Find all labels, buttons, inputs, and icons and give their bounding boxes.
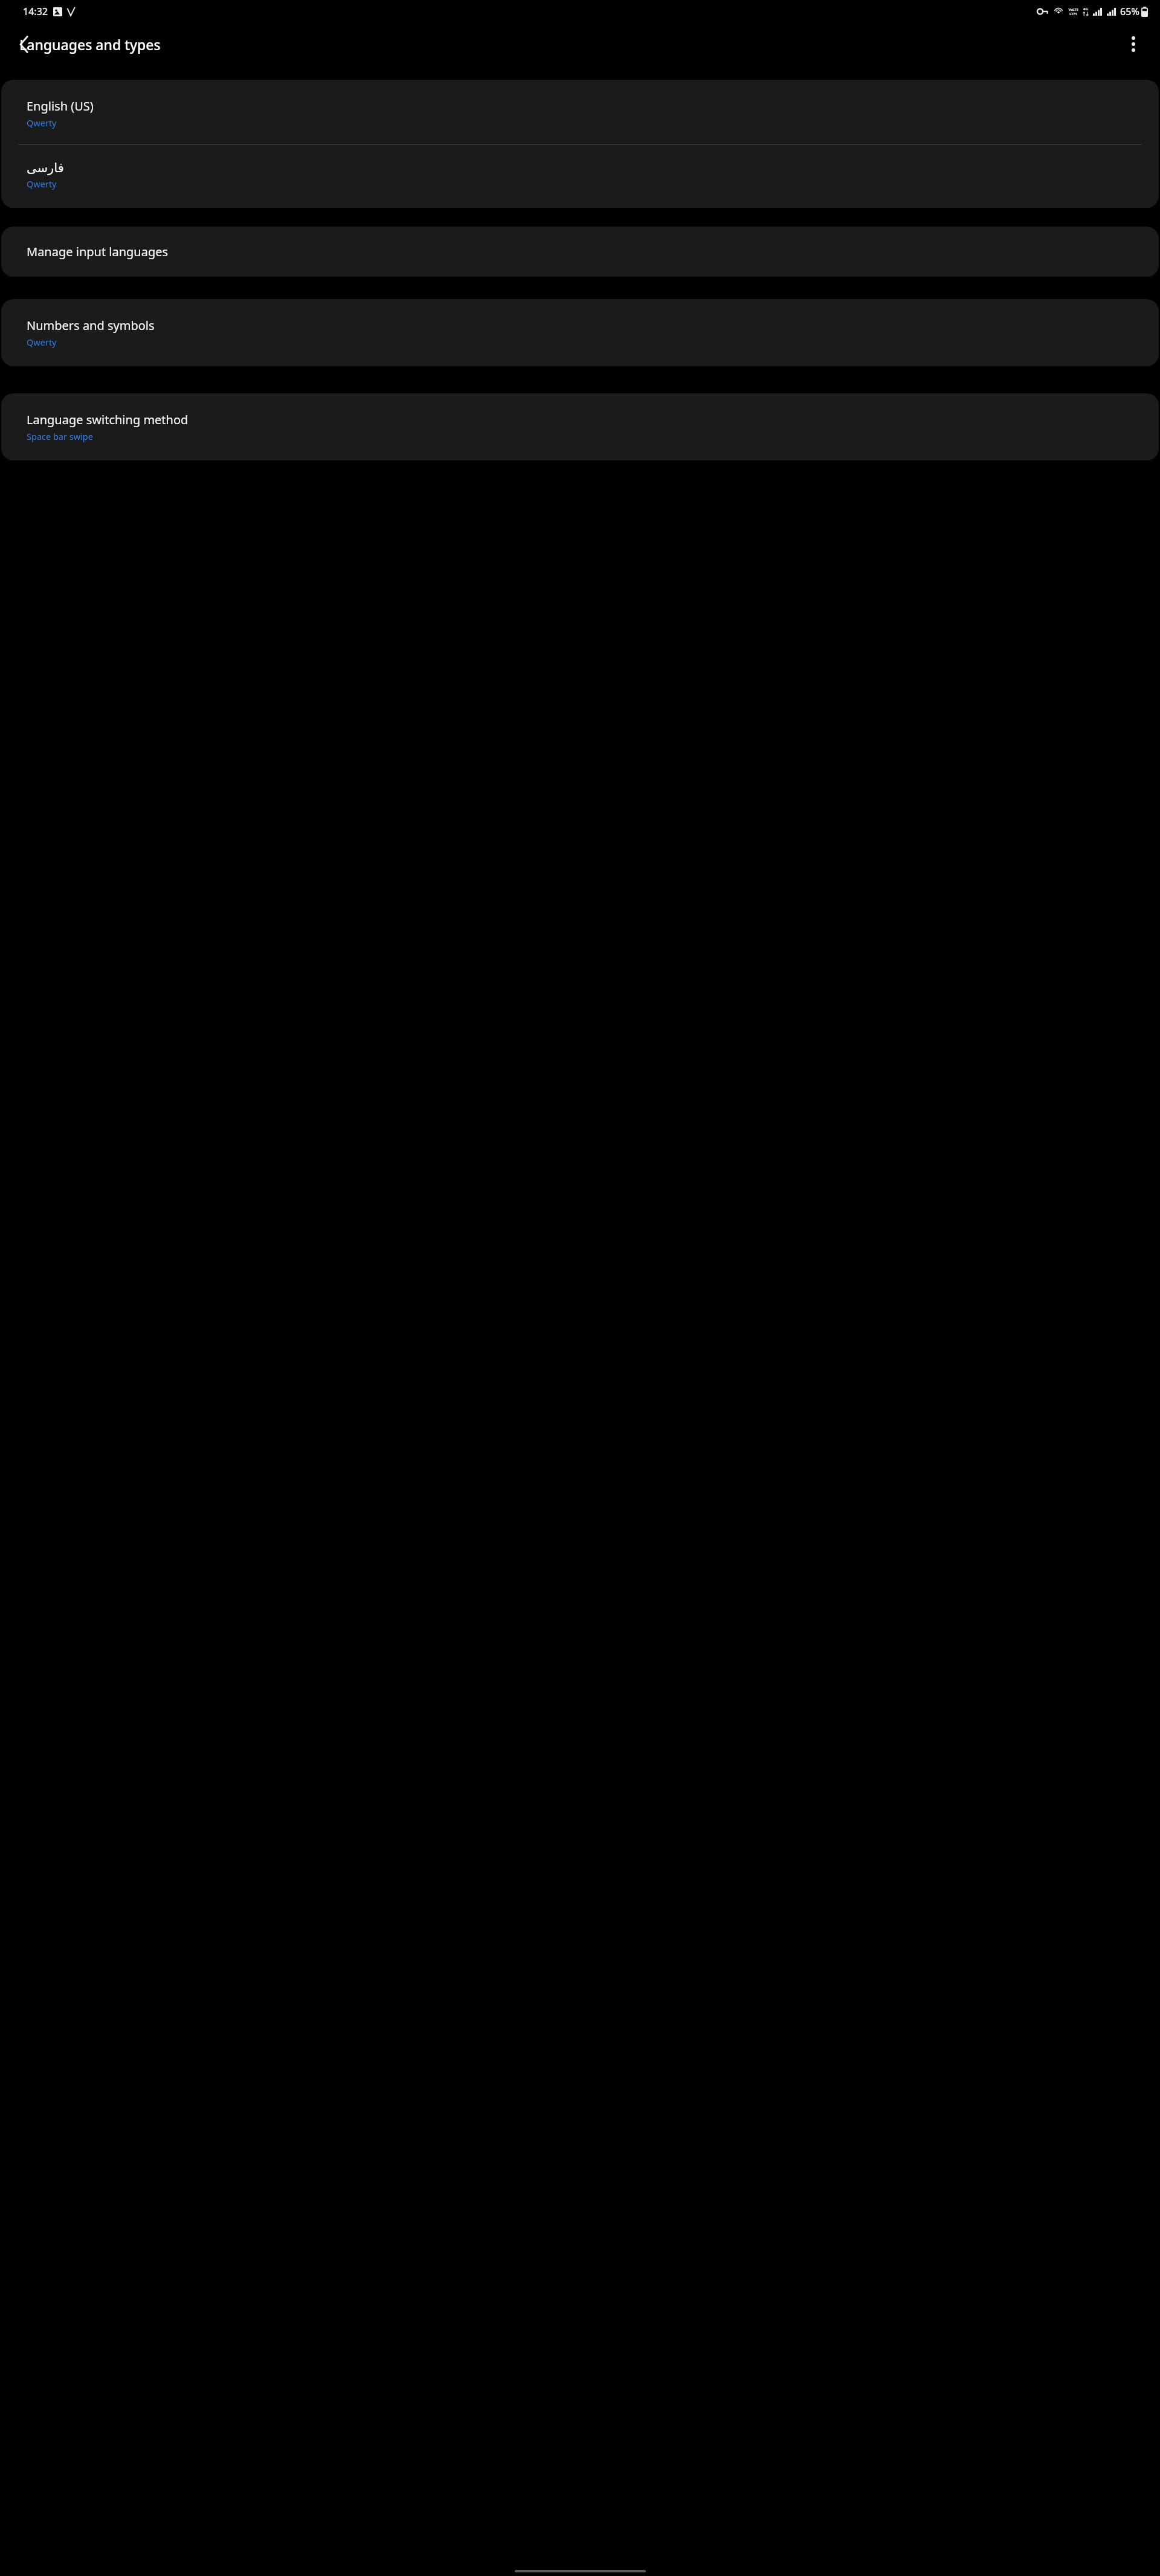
- button[interactable]: فارسی: [1, 145, 1159, 208]
- staticText: Manage input languages: [27, 244, 169, 260]
- staticText: English (US): [27, 98, 94, 114]
- staticText: VoLTE: [1068, 7, 1078, 11]
- button[interactable]: Manage input languages: [1, 227, 1159, 277]
- staticText: Languages and types: [19, 35, 161, 54]
- button[interactable]: More options: [1120, 31, 1147, 57]
- staticText: Qwerty: [27, 178, 57, 190]
- staticText: Qwerty: [27, 336, 57, 348]
- staticText: Qwerty: [27, 117, 57, 129]
- button[interactable]: English (US): [1, 80, 1159, 144]
- button[interactable]: Language switching method: [1, 393, 1159, 460]
- staticText: 4G: [1083, 7, 1088, 11]
- staticText: 14:32: [23, 5, 48, 18]
- button[interactable]: Back: [10, 31, 37, 57]
- button[interactable]: Numbers and symbols: [1, 299, 1159, 366]
- staticText: Language switching method: [27, 412, 188, 428]
- staticText: Space bar swipe: [27, 430, 93, 442]
- staticText: فارسی: [27, 161, 64, 175]
- staticText: LTE1: [1069, 11, 1077, 16]
- staticText: Numbers and symbols: [27, 317, 155, 334]
- staticText: 65%: [1120, 5, 1139, 18]
